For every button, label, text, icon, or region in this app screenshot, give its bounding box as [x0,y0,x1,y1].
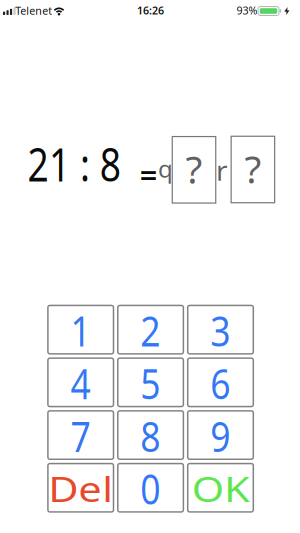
button[interactable]: 6 [188,358,253,406]
staticText: = [140,154,158,194]
staticText: 16:26 [137,3,164,17]
button[interactable]: 4 [48,358,113,406]
staticText: 7 [69,408,93,463]
button[interactable]: 7 [48,411,113,459]
staticText: 9 [208,408,232,463]
button[interactable]: OK [188,463,253,512]
staticText: r [216,151,228,189]
staticText: q [158,153,173,184]
staticText: Del [54,465,108,511]
staticText: OK [196,465,244,511]
button[interactable]: 0 [118,463,183,512]
staticText: 5 [139,356,163,411]
staticText: 2 [139,303,163,358]
button[interactable]: 2 [118,305,183,354]
staticText: 0 [139,461,163,516]
button[interactable]: Del [48,463,113,512]
staticText: 1 [69,303,93,358]
staticText: 4 [69,356,93,411]
staticText: 6 [208,356,232,411]
staticText: 3 [208,303,232,358]
button[interactable]: 5 [118,358,183,406]
staticText: 21 : 8 [17,134,131,194]
button[interactable]: 3 [188,305,253,354]
staticText: 93% [236,3,257,17]
staticText: 8 [139,408,163,463]
button[interactable]: 9 [188,411,253,459]
button[interactable]: 1 [48,305,113,354]
button[interactable]: 8 [118,411,183,459]
staticText: ? [244,143,261,194]
staticText: Telenet [15,3,52,18]
staticText: ? [185,143,202,194]
